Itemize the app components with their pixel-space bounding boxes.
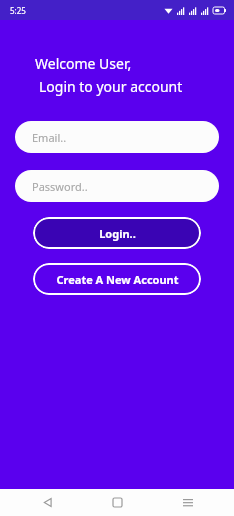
button[interactable]: Home bbox=[93, 489, 141, 516]
staticText: Create A New Account bbox=[56, 272, 179, 287]
staticText: Welcome User, bbox=[35, 54, 132, 73]
button[interactable]: Password.. bbox=[15, 170, 219, 202]
button[interactable]: Recent apps bbox=[164, 489, 212, 516]
staticText: Login.. bbox=[99, 226, 136, 241]
staticText: Login to your account bbox=[39, 77, 183, 96]
button[interactable]: Create A New Account bbox=[33, 263, 201, 295]
staticText: Password.. bbox=[32, 179, 88, 194]
button[interactable]: Email.. bbox=[15, 121, 219, 153]
staticText: Email.. bbox=[32, 130, 67, 145]
button[interactable]: Back bbox=[23, 489, 71, 516]
staticText: 5:25 bbox=[10, 5, 26, 16]
button[interactable]: Login.. bbox=[33, 217, 201, 249]
